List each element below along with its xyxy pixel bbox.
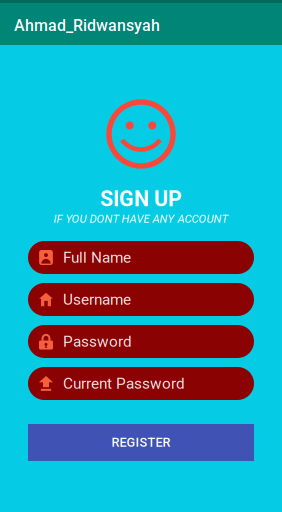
staticText: SIGN UP: [100, 186, 182, 211]
button[interactable]: Password: [28, 325, 254, 358]
staticText: REGISTER: [111, 435, 170, 450]
staticText: IF YOU DONT HAVE ANY ACCOUNT: [53, 212, 228, 226]
button[interactable]: Username: [28, 283, 254, 316]
button[interactable]: Full Name: [28, 241, 254, 274]
button[interactable]: REGISTER: [28, 424, 254, 461]
staticText: Full Name: [63, 248, 131, 266]
staticText: Current Password: [63, 374, 185, 392]
staticText: Ahmad_Ridwansyah: [14, 16, 160, 35]
staticText: Password: [63, 332, 132, 350]
staticText: Username: [63, 290, 131, 308]
button[interactable]: Current Password: [28, 367, 254, 400]
